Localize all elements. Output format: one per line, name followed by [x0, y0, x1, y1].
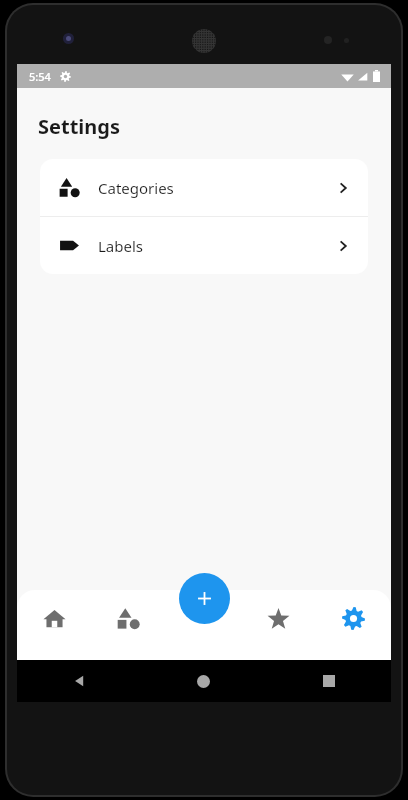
- staticText: 5:54: [29, 69, 51, 84]
- button[interactable]: Home: [141, 660, 266, 702]
- button[interactable]: Settings: [316, 590, 391, 660]
- button[interactable]: Favorites: [241, 590, 316, 660]
- button[interactable]: Home: [17, 590, 91, 660]
- button[interactable]: Categories: [91, 590, 166, 660]
- staticText: Labels: [98, 236, 144, 256]
- button[interactable]: Back: [17, 660, 141, 702]
- button[interactable]: Labels: [40, 217, 368, 274]
- staticText: Categories: [98, 178, 174, 198]
- button[interactable]: Add: [179, 573, 230, 624]
- button[interactable]: Recents: [266, 660, 391, 702]
- staticText: Settings: [38, 113, 120, 140]
- button[interactable]: Categories: [40, 159, 368, 216]
